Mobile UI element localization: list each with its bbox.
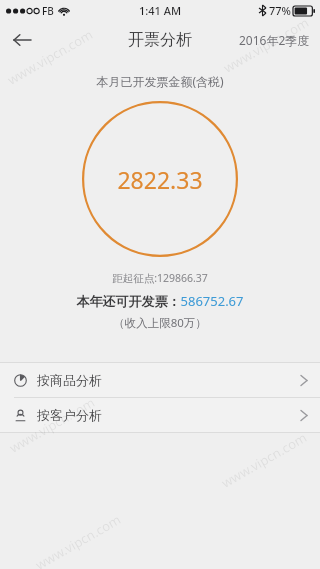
staticText: www.vipcn.com bbox=[4, 25, 96, 89]
staticText: www.vipcn.com bbox=[6, 393, 98, 457]
button[interactable]: 按客户分析 bbox=[0, 398, 320, 432]
staticText: 2822.33 bbox=[117, 164, 203, 195]
staticText: www.vipcn.com bbox=[218, 428, 310, 492]
staticText: 按商品分析 bbox=[37, 372, 300, 388]
staticText: （收入上限80万） bbox=[0, 315, 320, 331]
staticText: 开票分析 bbox=[128, 30, 192, 50]
staticText: 距起征点:129866.37 bbox=[0, 271, 320, 285]
staticText: 77% bbox=[269, 3, 291, 18]
staticText: 1:41 AM bbox=[139, 3, 182, 18]
button[interactable]: 按商品分析 bbox=[0, 363, 320, 397]
staticText: 本月已开发票金额(含税) bbox=[0, 73, 320, 89]
staticText: www.vipcn.com bbox=[220, 13, 312, 77]
staticText: 按客户分析 bbox=[37, 407, 300, 423]
button[interactable]: 2016年2季度 bbox=[229, 24, 320, 56]
staticText: FB bbox=[42, 4, 54, 18]
staticText: 2016年2季度 bbox=[239, 32, 310, 48]
staticText: 本年还可开发票：586752.67 bbox=[0, 292, 320, 310]
button[interactable]: Back bbox=[0, 21, 44, 59]
